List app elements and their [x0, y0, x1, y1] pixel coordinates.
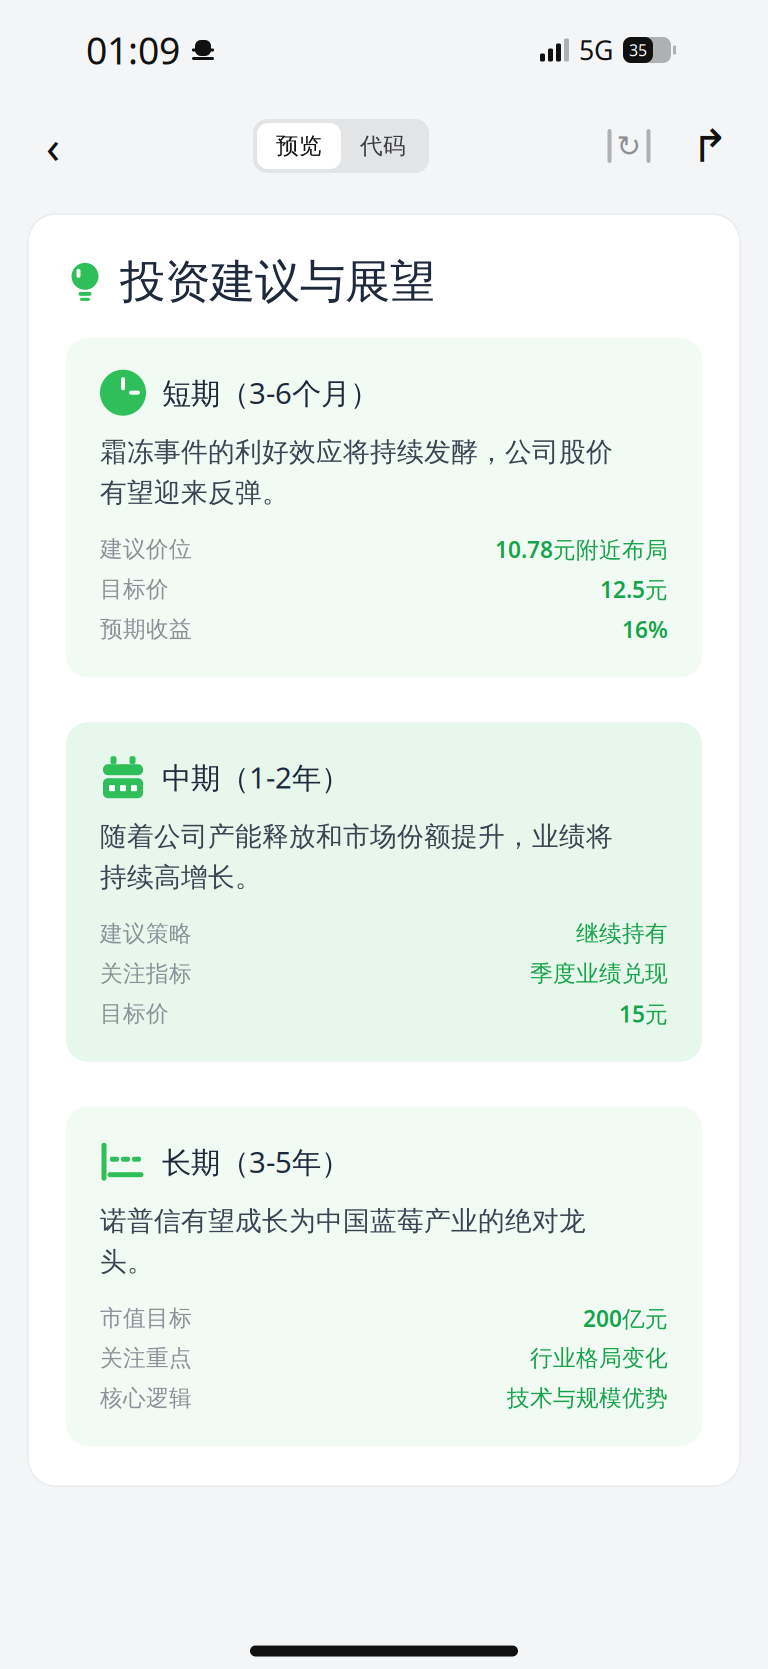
staticText: 季度业绩兑现	[530, 960, 668, 988]
staticText: 01:09	[86, 25, 180, 75]
staticText: 投资建议与展望	[120, 254, 435, 310]
staticText: 市值目标	[100, 1304, 192, 1332]
staticText: 关注重点	[100, 1344, 192, 1372]
staticText: 诺普信有望成长为中国蓝莓产业的绝对龙	[100, 1205, 586, 1237]
staticText: 建议价位	[100, 535, 192, 563]
staticText: 建议策略	[100, 920, 192, 948]
staticText: 代码	[360, 132, 406, 160]
staticText: 16%	[622, 614, 668, 644]
button[interactable]: Rotate	[598, 118, 660, 174]
staticText: 持续高增长。	[100, 861, 262, 894]
staticText: 行业格局变化	[530, 1344, 668, 1372]
button[interactable]: 预览	[257, 123, 341, 169]
staticText: ‹	[46, 116, 60, 176]
staticText: 短期（3-6个月）	[162, 373, 379, 412]
staticText: 200亿元	[583, 1303, 668, 1333]
staticText: 继续持有	[576, 920, 668, 948]
staticText: 中期（1-2年）	[162, 758, 350, 797]
staticText: 10.78元附近布局	[495, 534, 668, 564]
staticText: 随着公司产能释放和市场份额提升，业绩将	[100, 820, 613, 853]
staticText: 目标价	[100, 575, 169, 603]
staticText: ↱	[691, 120, 729, 172]
staticText: 目标价	[100, 1000, 169, 1028]
button[interactable]: 代码	[341, 123, 425, 169]
button[interactable]: Share	[682, 118, 738, 174]
staticText: 预览	[276, 132, 322, 160]
staticText: 有望迎来反弹。	[100, 476, 289, 509]
staticText: 长期（3-5年）	[162, 1142, 350, 1181]
staticText: 12.5元	[600, 574, 668, 604]
staticText: 预期收益	[100, 615, 192, 643]
button[interactable]: Back	[22, 115, 84, 177]
staticText: 35	[629, 39, 647, 61]
staticText: 15元	[619, 999, 668, 1029]
staticText: 霜冻事件的利好效应将持续发酵，公司股价	[100, 436, 613, 468]
staticText: 核心逻辑	[100, 1384, 192, 1412]
staticText: 技术与规模优势	[507, 1384, 668, 1412]
staticText: 头。	[100, 1245, 154, 1278]
staticText: 5G	[579, 32, 613, 68]
staticText: 关注指标	[100, 960, 192, 988]
staticText: ↻	[616, 129, 641, 163]
